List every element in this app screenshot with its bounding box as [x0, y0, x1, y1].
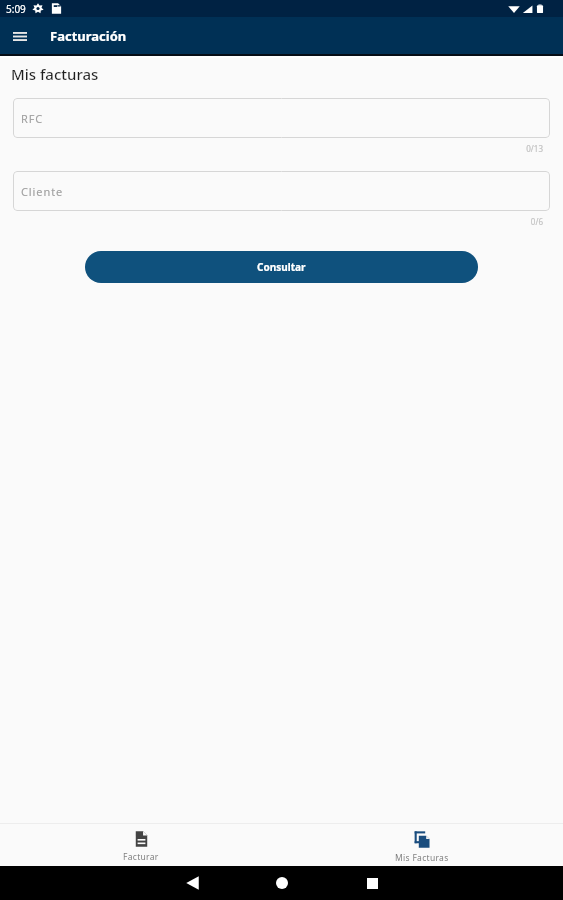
button[interactable]: Open navigation menu — [0, 17, 40, 56]
button[interactable]: Back — [170, 866, 214, 900]
staticText: Mis Facturas — [395, 852, 449, 864]
button[interactable]: Cliente — [13, 171, 550, 211]
button[interactable]: Mis Facturas — [281, 824, 563, 866]
staticText: Facturación — [50, 27, 127, 45]
staticText: RFC — [21, 111, 44, 126]
staticText: 0/6 — [0, 216, 543, 227]
button[interactable]: Facturar — [0, 824, 281, 866]
staticText: Mis facturas — [11, 64, 99, 84]
staticText: 5:09 — [6, 2, 26, 16]
button[interactable]: RFC — [13, 98, 550, 138]
staticText: Cliente — [21, 184, 64, 199]
button[interactable]: Home — [260, 866, 304, 900]
staticText: Facturar — [123, 851, 159, 863]
button[interactable]: Recent apps — [350, 866, 394, 900]
staticText: 0/13 — [0, 143, 543, 154]
staticText: Consultar — [257, 260, 306, 274]
button[interactable]: Consultar — [85, 251, 478, 283]
